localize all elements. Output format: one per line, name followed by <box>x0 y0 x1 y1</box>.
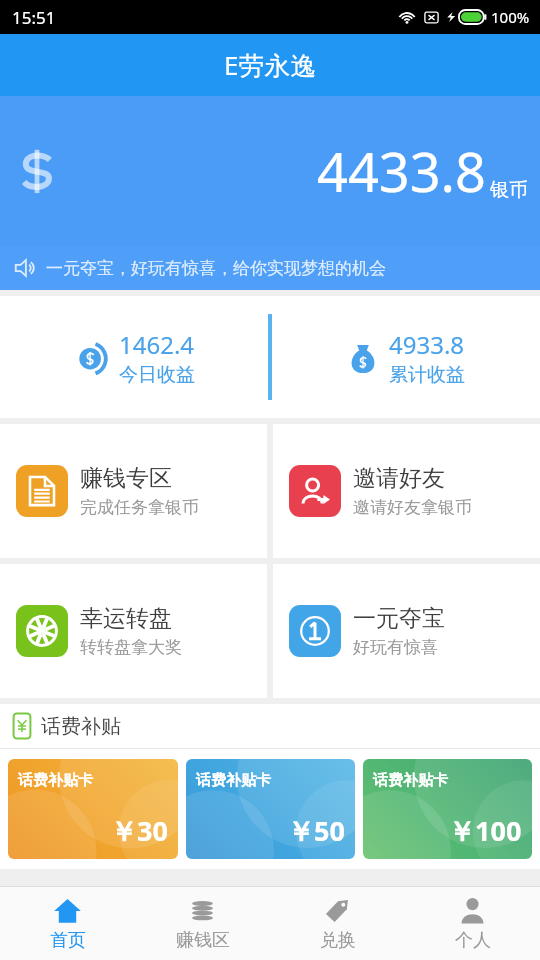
staticText: 话费补贴卡 <box>18 771 93 790</box>
staticText: 一元夺宝，好玩有惊喜，给你实现梦想的机会 <box>46 258 386 279</box>
button[interactable]: 赚钱区 <box>135 887 270 960</box>
staticText: 话费补贴卡 <box>373 771 448 790</box>
button[interactable]: 话费补贴 <box>0 704 540 748</box>
staticText: 4433.8 <box>317 134 486 208</box>
button[interactable]: 话费补贴卡 <box>8 759 178 859</box>
staticText: 首页 <box>50 929 86 952</box>
button[interactable]: 首页 <box>0 887 135 960</box>
staticText: 话费补贴 <box>41 714 121 739</box>
staticText: 100% <box>491 7 530 27</box>
button[interactable]: 赚钱专区 <box>0 424 267 558</box>
staticText: 15:51 <box>12 6 56 29</box>
button[interactable]: 话费补贴卡 <box>186 759 355 859</box>
staticText: 话费补贴卡 <box>196 771 271 790</box>
staticText: 邀请好友 <box>353 464 445 493</box>
staticText: 好玩有惊喜 <box>353 637 438 658</box>
staticText: ￥50 <box>287 812 345 849</box>
staticText: 1462.4 <box>119 328 195 361</box>
staticText: 一元夺宝 <box>353 604 445 633</box>
button[interactable]: 个人 <box>405 887 540 960</box>
staticText: 完成任务拿银币 <box>80 497 199 518</box>
staticText: 4933.8 <box>389 328 465 361</box>
staticText: 赚钱专区 <box>80 464 172 493</box>
button[interactable]: 4933.8 <box>270 296 540 418</box>
button[interactable]: 话费补贴卡 <box>363 759 532 859</box>
staticText: ￥30 <box>110 812 168 849</box>
staticText: 幸运转盘 <box>80 604 172 633</box>
button[interactable]: 幸运转盘 <box>0 564 267 698</box>
staticText: 赚钱区 <box>176 929 230 952</box>
button[interactable]: 邀请好友 <box>273 424 540 558</box>
staticText: E劳永逸 <box>224 47 317 83</box>
staticText: 今日收益 <box>119 363 195 387</box>
staticText: 转转盘拿大奖 <box>80 637 182 658</box>
staticText: 银币 <box>490 178 528 202</box>
staticText: 邀请好友拿银币 <box>353 497 472 518</box>
button[interactable]: 一元夺宝 <box>273 564 540 698</box>
button[interactable]: Announcement <box>0 246 540 290</box>
staticText: ￥100 <box>448 812 522 849</box>
button[interactable]: 1462.4 <box>0 296 270 418</box>
other: Announcement <box>14 257 36 279</box>
staticText: 个人 <box>455 929 491 952</box>
staticText: 兑换 <box>320 929 356 952</box>
staticText: 累计收益 <box>389 363 465 387</box>
button[interactable]: 兑换 <box>270 887 405 960</box>
